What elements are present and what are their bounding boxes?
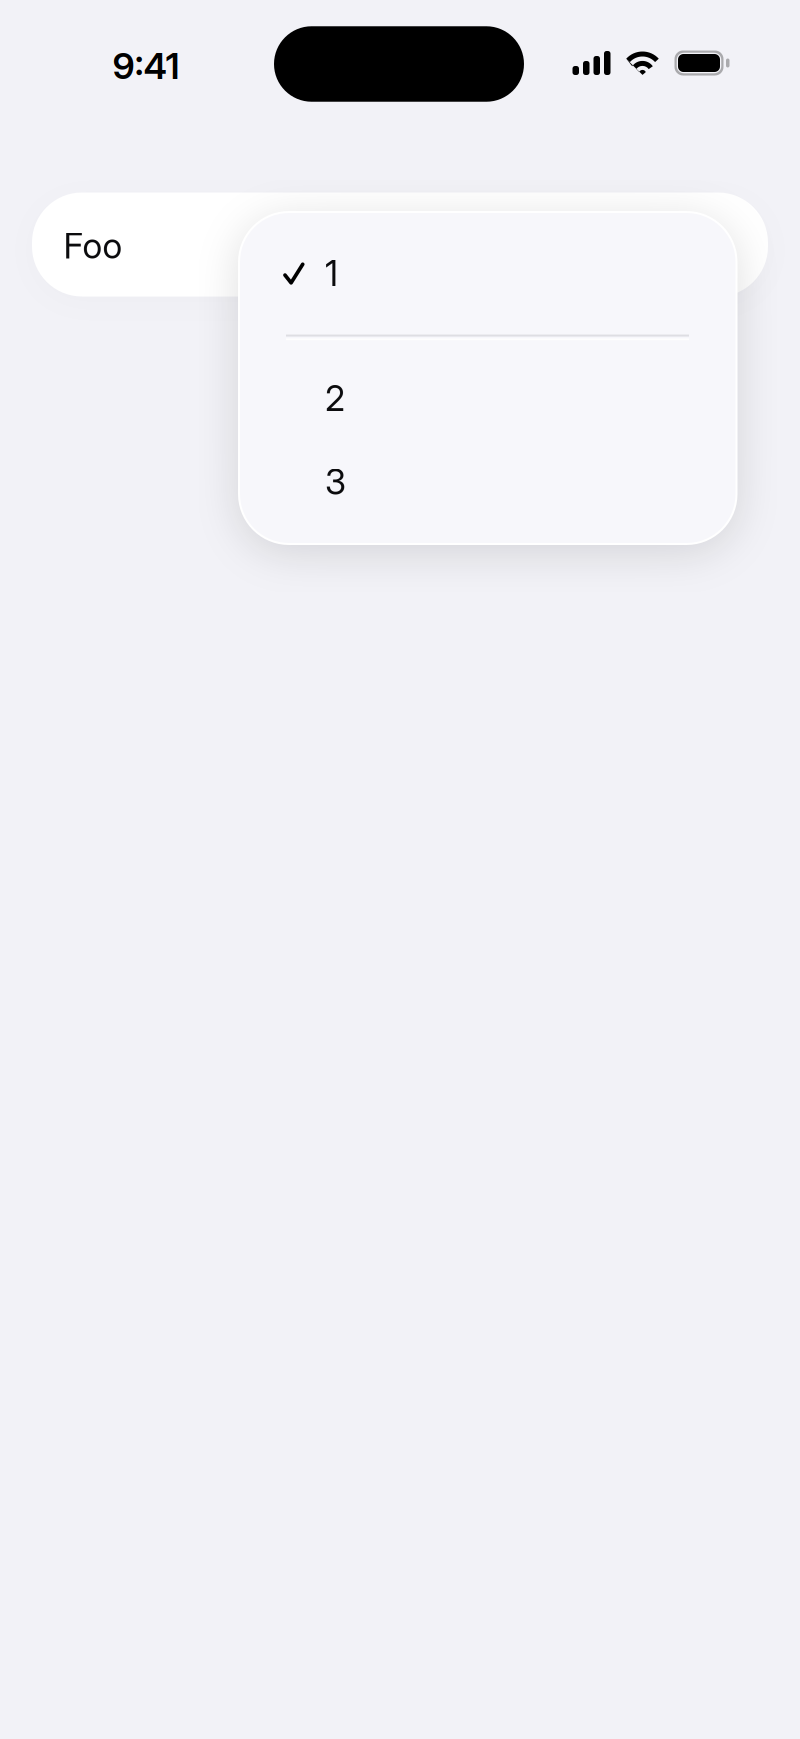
staticText: 2 xyxy=(325,377,345,419)
button[interactable]: 1 xyxy=(239,231,736,315)
staticText: 1 xyxy=(325,252,338,294)
staticText: Foo xyxy=(63,225,122,267)
button[interactable]: 2 xyxy=(239,356,736,440)
staticText: 3 xyxy=(325,461,346,503)
button[interactable]: Foo xyxy=(32,192,768,296)
button[interactable]: 3 xyxy=(239,439,736,523)
staticText: 9:41 xyxy=(112,44,179,88)
